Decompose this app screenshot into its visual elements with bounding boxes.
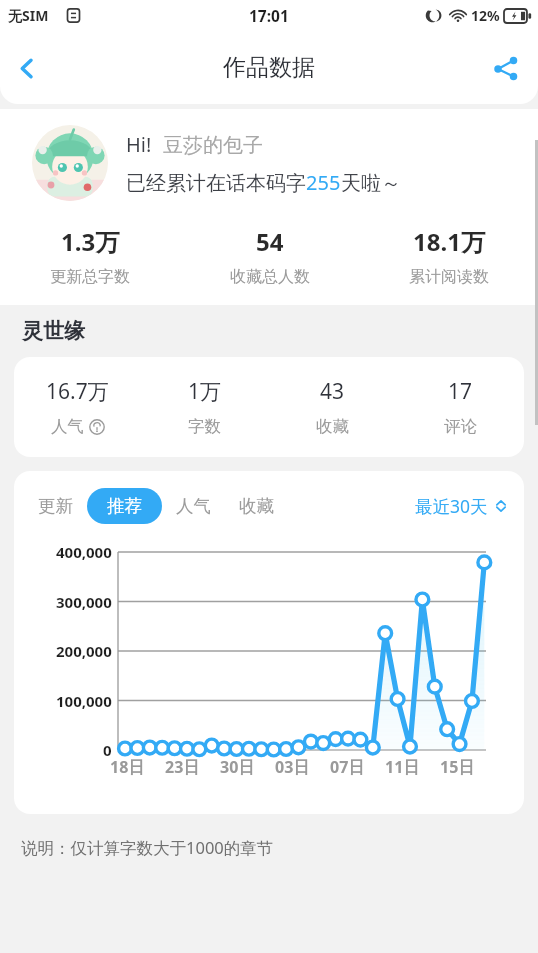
staticText: 说明：仅计算字数大于1000的章节	[21, 836, 274, 859]
staticText: 16.7万	[46, 377, 109, 406]
staticText: 1.3万	[61, 225, 120, 258]
button[interactable]: 16.7万	[14, 377, 141, 437]
staticText: 更新	[38, 495, 73, 517]
staticText: 灵世缘	[22, 318, 85, 344]
button[interactable]: 人气	[162, 488, 225, 524]
staticText: 豆莎的包子	[163, 133, 263, 158]
staticText: 最近30天	[415, 494, 488, 518]
staticText: 100,000	[56, 691, 112, 711]
button[interactable]: 54	[180, 225, 359, 287]
staticText: 天啦～	[341, 171, 401, 196]
staticText: 12%	[471, 6, 500, 25]
staticText: 255	[306, 169, 341, 196]
staticText: 11日	[385, 756, 420, 778]
staticText: 1万	[188, 377, 222, 406]
staticText: 15日	[440, 756, 475, 778]
staticText: 推荐	[107, 495, 142, 517]
staticText: 30日	[220, 756, 255, 778]
button[interactable]: 17	[396, 377, 524, 437]
staticText: 人气	[176, 495, 211, 517]
button[interactable]: 返回	[0, 41, 54, 95]
staticText: 17:01	[249, 5, 289, 26]
button[interactable]: 1万	[141, 377, 268, 437]
staticText: 18日	[110, 756, 145, 778]
staticText: 收藏总人数	[230, 267, 310, 287]
staticText: 人气	[51, 416, 84, 437]
staticText: 累计阅读数	[409, 267, 489, 287]
staticText: 54	[256, 225, 284, 258]
button[interactable]: 分享	[481, 44, 529, 92]
staticText: 43	[320, 377, 345, 406]
staticText: 作品数据	[223, 53, 315, 82]
button[interactable]: 收藏	[225, 488, 288, 524]
staticText: 收藏	[239, 495, 274, 517]
staticText: 17	[448, 377, 473, 406]
staticText: 400,000	[56, 542, 112, 562]
button[interactable]: 43	[268, 377, 396, 437]
staticText: 无SIM	[8, 6, 49, 25]
staticText: 字数	[188, 416, 221, 437]
staticText: 0	[103, 740, 112, 760]
staticText: 07日	[330, 756, 365, 778]
staticText: 收藏	[316, 416, 349, 437]
staticText: 23日	[165, 756, 200, 778]
button[interactable]: 1.3万	[0, 225, 180, 287]
button[interactable]: 18.1万	[359, 225, 538, 287]
staticText: 18.1万	[413, 225, 485, 258]
staticText: 更新总字数	[50, 267, 130, 287]
button[interactable]: 最近30天	[415, 494, 508, 518]
staticText: 评论	[444, 416, 477, 437]
staticText: 300,000	[56, 592, 112, 612]
button[interactable]: 更新	[24, 488, 87, 524]
staticText: 03日	[275, 756, 310, 778]
staticText: 200,000	[56, 641, 112, 661]
button[interactable]: 推荐	[87, 488, 162, 524]
staticText: 已经累计在话本码字	[126, 171, 306, 196]
staticText: Hi!	[126, 131, 152, 158]
